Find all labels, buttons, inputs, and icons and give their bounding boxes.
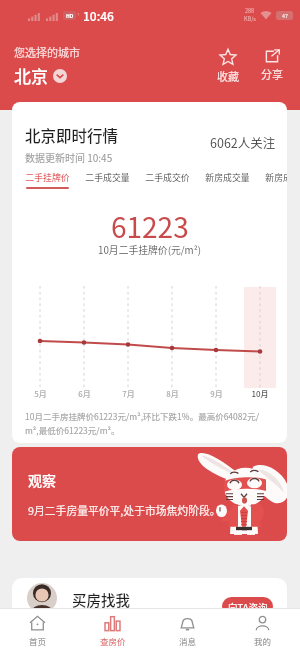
staticText: 5月 bbox=[34, 388, 47, 400]
button[interactable]: 二手挂牌价 bbox=[25, 171, 69, 189]
button[interactable]: 向TA咨询 bbox=[222, 597, 273, 616]
button[interactable]: 新房成交量 bbox=[205, 171, 249, 187]
button[interactable]: 新房成交价 bbox=[265, 171, 287, 187]
staticText: 分享 bbox=[261, 66, 283, 82]
staticText: 二手挂牌价 bbox=[25, 171, 69, 184]
staticText: 查房价 bbox=[100, 635, 126, 647]
staticText: 新房成交价 bbox=[265, 171, 287, 184]
staticText: 7月 bbox=[122, 388, 135, 400]
button[interactable]: 收藏 bbox=[211, 47, 245, 85]
staticText: 我的 bbox=[254, 635, 272, 647]
staticText: 9月 bbox=[210, 388, 223, 400]
staticText: 向TA咨询 bbox=[228, 600, 268, 614]
staticText: 北京 bbox=[14, 63, 48, 88]
staticText: HD bbox=[66, 12, 74, 19]
staticText: 观察 bbox=[28, 470, 56, 490]
staticText: 您选择的城市 bbox=[14, 44, 80, 60]
staticText: ¹ bbox=[77, 11, 80, 20]
button[interactable]: 二手成交量 bbox=[85, 171, 129, 187]
button[interactable]: 二手成交价 bbox=[145, 171, 189, 187]
staticText: 消息 bbox=[179, 635, 197, 647]
button[interactable]: 首页 bbox=[0, 609, 75, 647]
staticText: KB/s bbox=[244, 15, 256, 23]
button[interactable]: 分享 bbox=[255, 47, 289, 83]
staticText: 61223 bbox=[111, 206, 189, 247]
staticText: 6062人关注 bbox=[210, 133, 276, 151]
staticText: 数据更新时间 10:45 bbox=[25, 150, 113, 164]
staticText: 新房成交量 bbox=[205, 171, 249, 184]
staticText: 10:46 bbox=[83, 7, 114, 24]
staticText: 288 bbox=[245, 7, 255, 15]
button[interactable]: 查房价 bbox=[75, 609, 150, 647]
staticText: 收藏 bbox=[217, 68, 239, 84]
staticText: 10月二手房挂牌价61223元/m²,环比下跌1%。最高价64082元/m²,最… bbox=[25, 410, 265, 436]
staticText: 二手成交量 bbox=[85, 171, 129, 184]
staticText: 买房找我 bbox=[72, 589, 130, 610]
staticText: 8月 bbox=[166, 388, 179, 400]
staticText: 10月 bbox=[251, 388, 269, 400]
button[interactable]: 切换城市 bbox=[53, 69, 67, 83]
staticText: 10月二手挂牌价(元/m²) bbox=[98, 243, 202, 257]
staticText: 北京即时行情 bbox=[25, 124, 119, 146]
staticText: 9月二手房量平价平,处于市场焦灼阶段。 bbox=[28, 502, 221, 518]
staticText: 6月 bbox=[78, 388, 91, 400]
staticText: 首页 bbox=[29, 635, 47, 647]
staticText: 二手成交价 bbox=[145, 171, 189, 184]
staticText: 47 bbox=[282, 12, 288, 19]
button[interactable]: 消息 bbox=[150, 609, 225, 647]
button[interactable]: 我的 bbox=[225, 609, 300, 647]
